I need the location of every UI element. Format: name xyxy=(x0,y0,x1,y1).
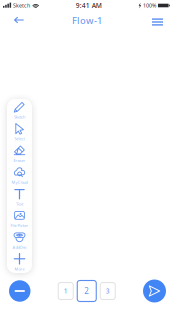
button[interactable]: 3 xyxy=(100,282,115,299)
button[interactable]: Text xyxy=(7,186,32,208)
button[interactable]: 1 xyxy=(58,282,73,299)
button[interactable]: Menu xyxy=(142,11,174,33)
staticText: Sketch xyxy=(13,2,30,9)
staticText: Eraser xyxy=(13,158,25,163)
button[interactable]: File Picker xyxy=(7,208,32,229)
button[interactable]: Eraser xyxy=(7,143,32,164)
staticText: File Picker xyxy=(10,223,28,228)
button[interactable]: MyCloud xyxy=(7,164,32,186)
staticText: Flow-1 xyxy=(72,14,102,27)
button[interactable]: Select xyxy=(7,121,32,143)
staticText: 3 xyxy=(106,287,110,295)
staticText: MyCloud xyxy=(11,179,27,185)
staticText: 100% xyxy=(143,2,156,9)
button[interactable]: 2 xyxy=(77,280,96,301)
staticText: 2 xyxy=(84,286,89,296)
staticText: Select xyxy=(14,136,24,141)
staticText: 1 xyxy=(64,287,68,295)
staticText: 9:41 AM xyxy=(76,1,102,10)
button[interactable]: Play xyxy=(143,279,166,302)
button[interactable]: More xyxy=(7,251,32,273)
button[interactable]: Zoom out xyxy=(9,280,30,302)
staticText: Sketch xyxy=(14,114,25,120)
button[interactable]: Back xyxy=(0,11,34,33)
staticText: AddOns xyxy=(12,245,26,250)
staticText: More xyxy=(14,266,24,272)
button[interactable]: Sketch xyxy=(7,99,32,121)
staticText: Text xyxy=(16,201,23,206)
button[interactable]: AddOns xyxy=(7,229,32,251)
